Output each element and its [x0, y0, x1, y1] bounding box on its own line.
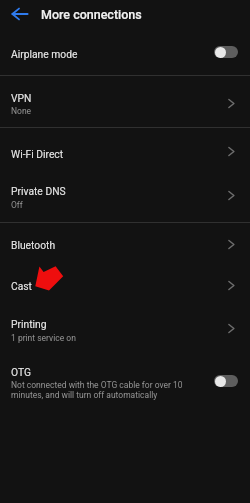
staticText: Bluetooth	[11, 239, 56, 251]
staticText: Not connected with the OTG cable for ove…	[11, 380, 189, 400]
staticText: More connections	[41, 7, 142, 22]
staticText: Airplane mode	[11, 48, 78, 60]
button[interactable]: Airplane mode	[214, 46, 238, 58]
staticText: Off	[11, 200, 211, 210]
staticText: None	[11, 106, 211, 116]
button[interactable]	[0, 304, 250, 352]
button[interactable]: Back	[9, 4, 31, 26]
staticText: OTG	[11, 366, 31, 378]
button[interactable]	[0, 30, 250, 75]
button[interactable]	[0, 129, 250, 170]
button[interactable]	[0, 76, 250, 128]
button[interactable]	[0, 223, 250, 264]
staticText: Wi-Fi Direct	[11, 148, 64, 160]
button[interactable]	[0, 170, 250, 222]
button[interactable]	[0, 352, 250, 402]
staticText: Cast	[11, 280, 32, 292]
staticText: Printing	[11, 318, 47, 330]
staticText: VPN	[11, 92, 32, 104]
button[interactable]	[0, 264, 250, 304]
button[interactable]: OTG	[214, 375, 238, 387]
staticText: 1 print service on	[11, 333, 211, 343]
staticText: Private DNS	[11, 185, 66, 197]
